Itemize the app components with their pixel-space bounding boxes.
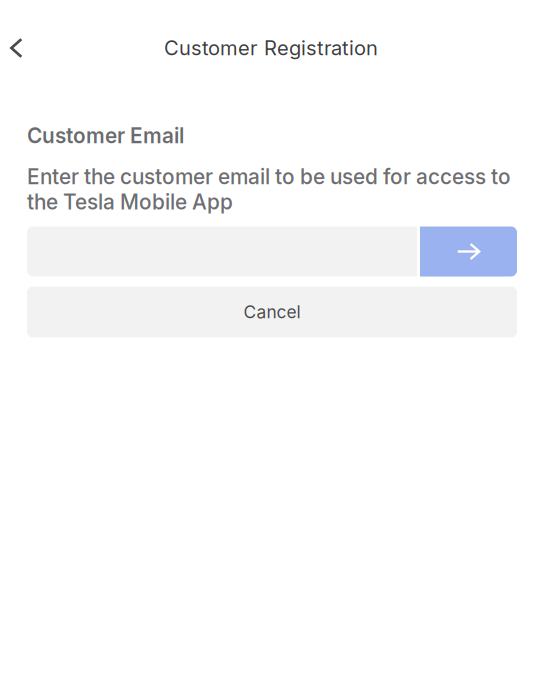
- staticText: Enter the customer email to be used for …: [27, 164, 511, 214]
- staticText: Cancel: [243, 301, 300, 322]
- button[interactable]: Submit: [420, 226, 517, 276]
- button[interactable]: Cancel: [27, 286, 517, 337]
- staticText: Customer Email: [27, 123, 184, 148]
- staticText: Customer Registration: [164, 36, 378, 60]
- button[interactable]: Back: [10, 26, 54, 70]
